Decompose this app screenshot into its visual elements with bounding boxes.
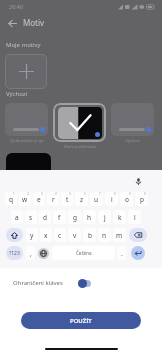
staticText: m [116, 231, 123, 240]
button[interactable]: v [68, 228, 81, 242]
button[interactable]: s [25, 210, 37, 224]
staticText: Výchozí [125, 138, 140, 143]
staticText: p [140, 195, 144, 204]
staticText: t [66, 195, 69, 204]
staticText: k [118, 213, 122, 222]
button[interactable]: Ohraničení kláves [0, 275, 162, 291]
button[interactable]: POUŽÍT [21, 312, 141, 329]
button[interactable]: r [47, 192, 59, 206]
button[interactable]: t [61, 192, 73, 206]
staticText: Zjednodušený sys [10, 138, 44, 143]
staticText: a [15, 213, 19, 222]
button[interactable] [5, 103, 48, 136]
staticText: 8 [114, 192, 116, 196]
button[interactable]: Enter [127, 244, 149, 262]
staticText: 2 [27, 192, 29, 196]
button[interactable]: e [33, 192, 45, 206]
staticText: x [44, 231, 48, 240]
staticText: w [22, 195, 28, 204]
button[interactable]: b [83, 228, 96, 242]
button[interactable] [111, 103, 154, 136]
staticText: f [58, 213, 61, 222]
staticText: c [58, 231, 62, 240]
button[interactable]: p [135, 192, 148, 206]
staticText: Výchozí [6, 90, 28, 98]
staticText: 0 [144, 192, 146, 196]
button[interactable]: Zpět [4, 15, 20, 31]
button[interactable]: , [26, 246, 35, 260]
staticText: 7 [99, 192, 101, 196]
button[interactable]: Shift [6, 228, 23, 242]
staticText: Moje motivy [6, 41, 41, 49]
button[interactable]: h [83, 210, 96, 224]
staticText: 1 [13, 192, 15, 196]
staticText: e [37, 195, 41, 204]
staticText: 9 [129, 192, 131, 196]
button[interactable]: Čeština [52, 246, 115, 260]
button[interactable]: o [120, 192, 133, 206]
staticText: d [43, 213, 47, 222]
staticText: q [9, 195, 13, 204]
button[interactable]: c [54, 228, 66, 242]
staticText: h [87, 213, 92, 222]
button[interactable]: n [98, 228, 111, 242]
button[interactable]: Hlasový vstup [133, 176, 144, 187]
button[interactable]: y [26, 228, 38, 242]
button[interactable]: a [11, 210, 23, 224]
button[interactable]: i [105, 192, 118, 206]
staticText: 5 [69, 192, 71, 196]
staticText: v [73, 231, 77, 240]
button[interactable]: f [53, 210, 66, 224]
staticText: r [52, 195, 55, 204]
staticText: u [94, 195, 99, 204]
button[interactable]: g [68, 210, 81, 224]
button[interactable]: k [113, 210, 126, 224]
staticText: Motiv [23, 17, 45, 28]
button[interactable]: ?123 [6, 246, 23, 260]
staticText: 4 [55, 192, 57, 196]
button[interactable]: . [117, 246, 126, 260]
button[interactable]: j [98, 210, 111, 224]
button[interactable] [53, 103, 106, 142]
staticText: Čeština [76, 250, 92, 256]
button[interactable]: Přidat motiv [5, 54, 47, 89]
staticText: y [30, 231, 34, 240]
staticText: POUŽÍT [70, 317, 92, 325]
button[interactable]: z [75, 192, 88, 206]
staticText: , [30, 249, 32, 258]
staticText: Ohraničení kláves [13, 279, 63, 287]
staticText: s [29, 213, 33, 222]
button[interactable]: Smazat [129, 228, 147, 242]
button[interactable]: w [19, 192, 31, 206]
button[interactable]: x [40, 228, 52, 242]
button[interactable]: Změnit jazyk [36, 244, 51, 262]
button[interactable]: m [113, 228, 126, 242]
staticText: Moře podtémata [64, 144, 96, 149]
button[interactable]: q [5, 192, 17, 206]
staticText: z [80, 195, 84, 204]
staticText: g [73, 213, 77, 222]
staticText: n [102, 231, 107, 240]
staticText: o [125, 195, 129, 204]
staticText: b [88, 231, 92, 240]
staticText: ?123 [9, 250, 20, 257]
staticText: j [104, 213, 106, 222]
staticText: l [134, 213, 136, 222]
button[interactable]: u [90, 192, 103, 206]
staticText: i [111, 195, 113, 204]
button[interactable]: d [39, 210, 51, 224]
staticText: 20:40 [9, 3, 24, 10]
staticText: 6 [84, 192, 86, 196]
staticText: 3 [41, 192, 43, 196]
button[interactable]: l [128, 210, 141, 224]
staticText: . [121, 249, 123, 258]
